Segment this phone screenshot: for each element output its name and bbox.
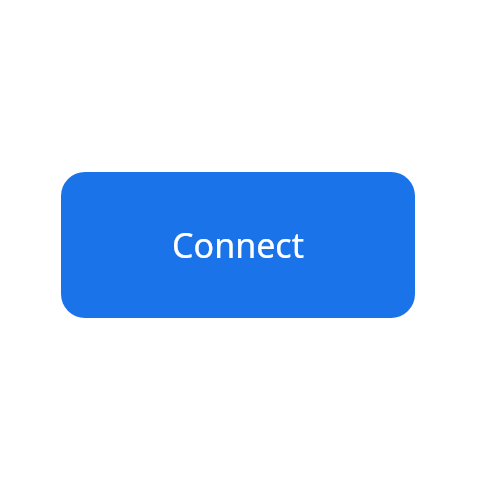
staticText: Connect bbox=[172, 222, 304, 268]
button[interactable]: Connect bbox=[61, 172, 415, 318]
